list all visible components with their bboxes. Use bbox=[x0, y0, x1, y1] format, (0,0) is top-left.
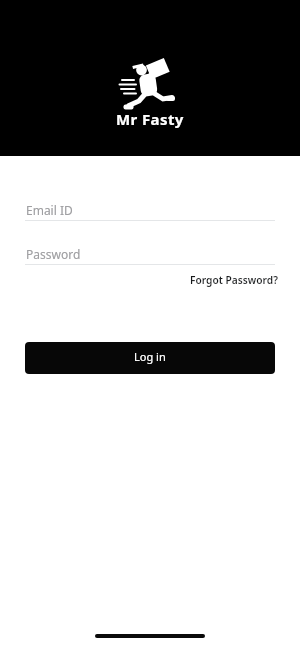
button[interactable]: Log in bbox=[25, 342, 275, 374]
button[interactable]: Password bbox=[25, 246, 275, 266]
staticText: Log in bbox=[134, 349, 166, 364]
staticText: Forgot Password? bbox=[190, 273, 278, 287]
button[interactable]: Forgot Password? bbox=[190, 273, 278, 287]
staticText: Password bbox=[26, 246, 81, 262]
staticText: Mr Fasty bbox=[116, 109, 184, 129]
button[interactable]: Email ID bbox=[25, 202, 275, 222]
staticText: Email ID bbox=[26, 202, 73, 218]
